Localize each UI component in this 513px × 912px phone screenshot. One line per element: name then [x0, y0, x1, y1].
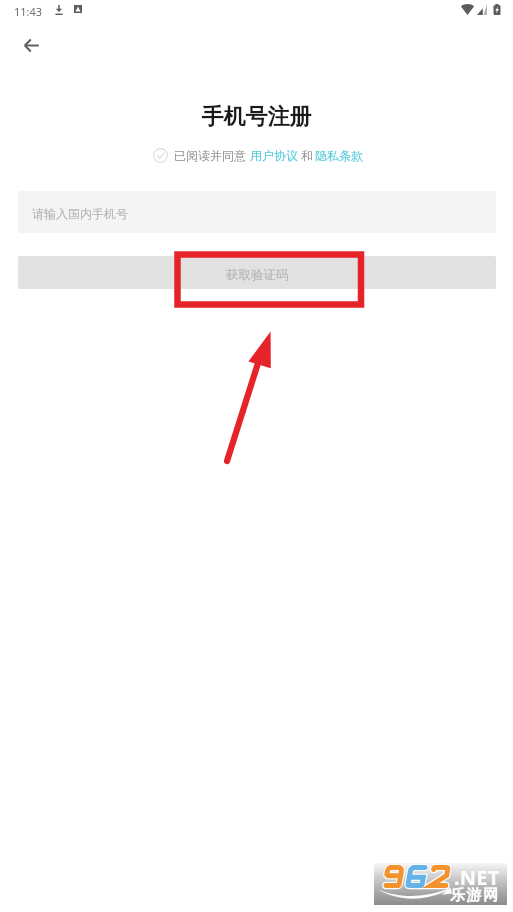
staticText: 已阅读并同意	[174, 148, 246, 163]
staticText: .NET	[454, 864, 500, 891]
staticText: 11:43	[14, 4, 43, 19]
staticText: 和	[301, 148, 313, 163]
button[interactable]: Back	[12, 26, 50, 64]
staticText: 请输入国内手机号	[32, 206, 128, 221]
button[interactable]: 用户协议	[250, 148, 298, 163]
staticText: 手机号注册	[0, 103, 513, 131]
button[interactable]: 获取验证码	[18, 256, 496, 289]
staticText: 获取验证码	[226, 267, 289, 283]
staticText: 用户协议	[250, 148, 298, 163]
button[interactable]: 请输入国内手机号	[18, 191, 496, 233]
button[interactable]: Agree checkbox	[153, 148, 168, 163]
staticText: 隐私条款	[315, 148, 363, 163]
staticText: 乐游网	[450, 886, 500, 905]
button[interactable]: 隐私条款	[315, 148, 363, 163]
